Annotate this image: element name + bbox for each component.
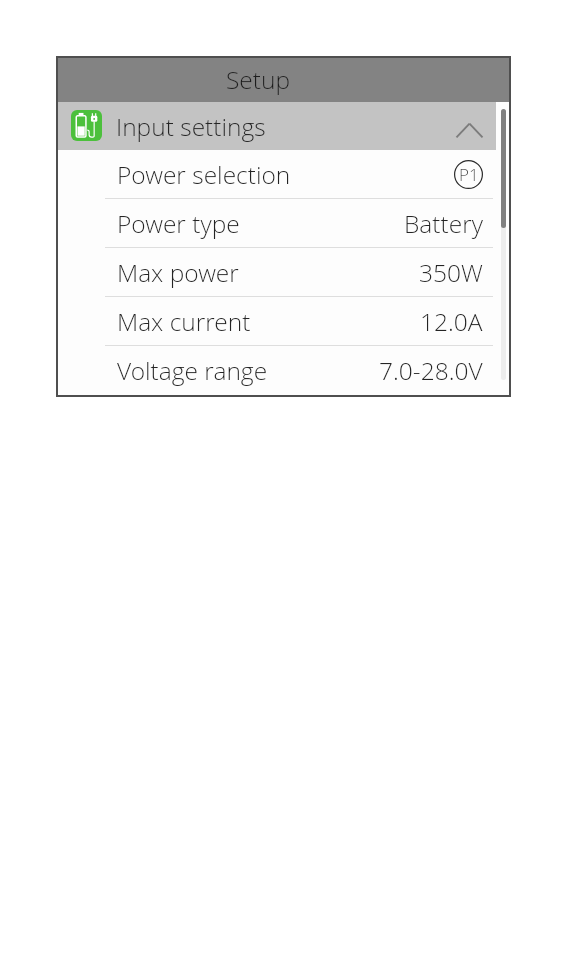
staticText: Max current [117, 305, 251, 338]
button[interactable]: Voltage range [56, 346, 496, 395]
staticText: Max power [117, 256, 239, 289]
button[interactable]: Max current [56, 297, 496, 346]
staticText: 7.0-28.0V [379, 354, 483, 387]
button[interactable]: Input settings [56, 102, 496, 150]
staticText: P1 [459, 163, 479, 186]
staticText: Battery [404, 207, 483, 240]
staticText: Power type [117, 207, 240, 240]
staticText: Voltage range [117, 354, 268, 387]
other: Collapse section [454, 118, 485, 138]
button[interactable]: Power type [56, 199, 496, 248]
staticText: Setup [226, 63, 291, 96]
staticText: 12.0A [420, 305, 483, 338]
other: Input settings [71, 110, 102, 141]
staticText: Input settings [116, 110, 266, 143]
button[interactable]: Max power [56, 248, 496, 297]
staticText: Power selection [117, 158, 291, 191]
button[interactable]: Power selection [56, 150, 496, 199]
staticText: 350W [419, 256, 483, 289]
